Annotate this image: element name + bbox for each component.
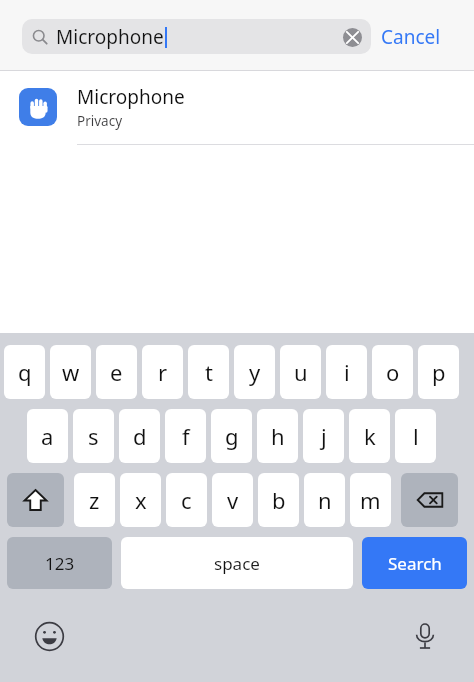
button[interactable]: h [257,409,298,463]
staticText: c [181,485,192,515]
button[interactable]: u [280,345,321,399]
button[interactable]: o [372,345,413,399]
button[interactable]: e [96,345,137,399]
staticText: z [89,485,100,515]
button[interactable]: space [121,537,353,589]
staticText: k [364,421,376,451]
button[interactable]: v [212,473,253,527]
button[interactable]: Clear text [343,28,362,47]
staticText: u [294,357,308,387]
button[interactable]: Microphone [22,19,371,54]
button[interactable]: Dictation [407,618,443,654]
button[interactable]: x [120,473,161,527]
staticText: Search [388,552,442,575]
button[interactable]: d [119,409,160,463]
staticText: t [205,357,213,387]
button[interactable]: Emoji [31,618,67,654]
button[interactable]: Cancel [381,19,441,54]
staticText: Privacy [77,112,123,130]
button[interactable]: c [166,473,207,527]
staticText: h [271,421,285,451]
button[interactable]: b [258,473,299,527]
staticText: q [18,357,32,387]
button[interactable]: y [234,345,275,399]
button[interactable]: Microphone [0,71,474,145]
staticText: d [133,421,147,451]
button[interactable]: w [50,345,91,399]
staticText: s [88,421,99,451]
button[interactable]: j [303,409,344,463]
staticText: o [386,357,400,387]
staticText: j [321,421,327,451]
button[interactable]: k [349,409,390,463]
staticText: w [62,357,80,387]
button[interactable]: s [73,409,114,463]
button[interactable]: g [211,409,252,463]
button[interactable]: l [395,409,436,463]
button[interactable]: m [350,473,391,527]
staticText: r [158,357,168,387]
staticText: y [249,357,261,387]
staticText: v [227,485,239,515]
button[interactable]: q [4,345,45,399]
staticText: l [413,421,419,451]
staticText: f [182,421,190,451]
staticText: m [360,485,381,515]
button[interactable]: f [165,409,206,463]
staticText: x [135,485,147,515]
button[interactable]: r [142,345,183,399]
staticText: Microphone [56,24,164,50]
button[interactable]: n [304,473,345,527]
staticText: p [432,357,446,387]
staticText: Cancel [381,24,441,50]
staticText: b [272,485,286,515]
button[interactable]: p [418,345,459,399]
staticText: Microphone [77,84,185,110]
staticText: e [110,357,123,387]
button[interactable]: a [27,409,68,463]
staticText: i [344,357,350,387]
button[interactable]: z [74,473,115,527]
staticText: space [214,552,260,575]
button[interactable]: Search [362,537,467,589]
button[interactable]: t [188,345,229,399]
button[interactable]: Shift [7,473,64,527]
staticText: 123 [45,552,75,575]
button[interactable]: 123 [7,537,112,589]
staticText: a [41,421,54,451]
staticText: n [318,485,332,515]
button[interactable]: Delete [401,473,458,527]
staticText: g [225,421,239,451]
button[interactable]: i [326,345,367,399]
